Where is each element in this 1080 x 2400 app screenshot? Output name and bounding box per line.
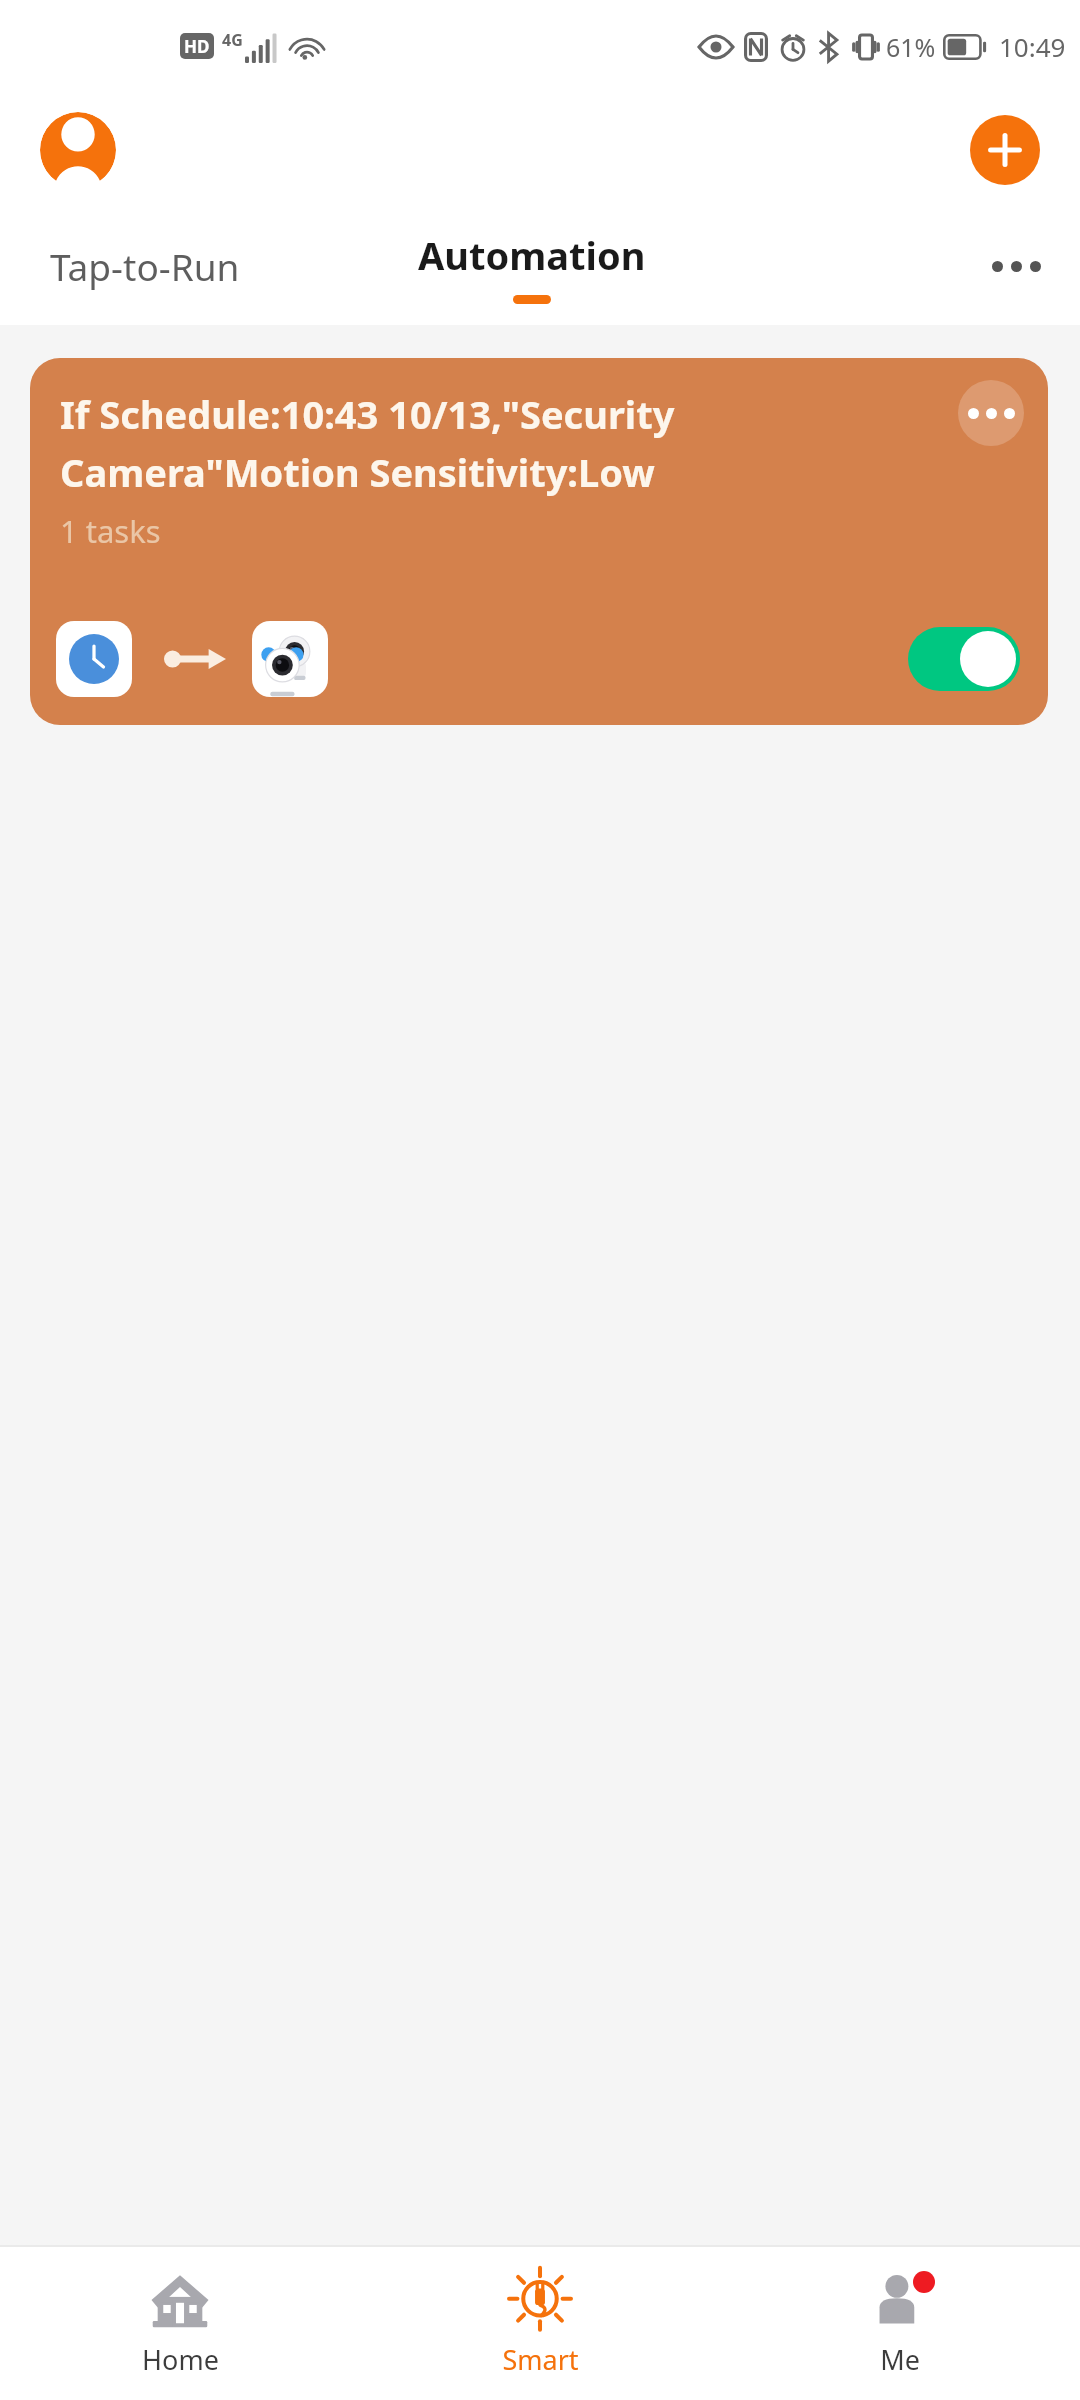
button[interactable]: If Schedule:10:43 10/13,"Security Camera…	[30, 358, 1048, 725]
button[interactable]: Home	[0, 2247, 360, 2400]
button[interactable]: Me	[720, 2247, 1080, 2400]
staticText: HD	[184, 35, 210, 58]
button[interactable]: Add	[970, 115, 1040, 185]
button[interactable]: Automation options	[958, 380, 1024, 446]
staticText: Smart	[502, 2341, 579, 2378]
button[interactable]: Profile	[40, 112, 116, 188]
staticText: 10:49	[999, 29, 1066, 64]
button[interactable]: Enable automation	[908, 627, 1020, 691]
staticText: Home	[142, 2341, 219, 2378]
staticText: Tap-to-Run	[50, 241, 240, 291]
staticText: 61%	[886, 30, 936, 64]
button[interactable]: More options	[976, 226, 1056, 306]
staticText: 4G	[222, 29, 243, 51]
button[interactable]: Tap-to-Run	[30, 225, 260, 307]
button[interactable]: Smart	[360, 2247, 720, 2400]
staticText: 1 tasks	[60, 510, 161, 552]
button[interactable]: Automation	[398, 221, 666, 312]
staticText: Automation	[418, 229, 646, 281]
staticText: Me	[880, 2341, 920, 2378]
staticText: If Schedule:10:43 10/13,"Security Camera…	[60, 388, 884, 498]
